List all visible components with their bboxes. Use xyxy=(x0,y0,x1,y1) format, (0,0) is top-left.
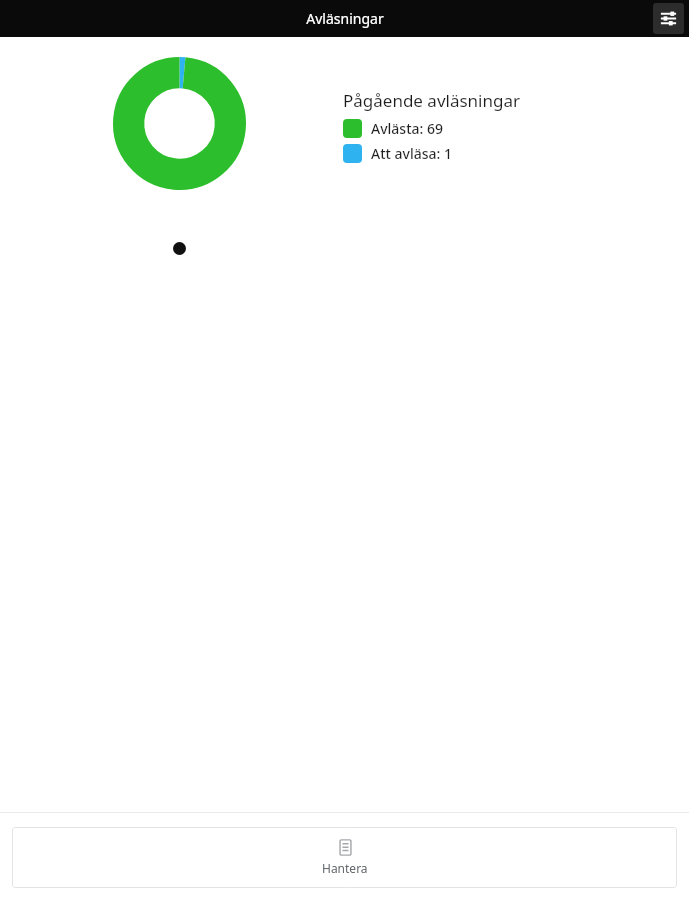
staticText: Pågående avläsningar xyxy=(343,89,521,112)
staticText: Att avläsa: 1 xyxy=(371,144,452,163)
staticText: Avlästa: 69 xyxy=(371,119,443,138)
button[interactable]: Hantera xyxy=(12,827,677,888)
button[interactable]: Filter xyxy=(653,3,684,34)
staticText: Avläsningar xyxy=(306,9,384,28)
staticText: Hantera xyxy=(322,860,368,876)
